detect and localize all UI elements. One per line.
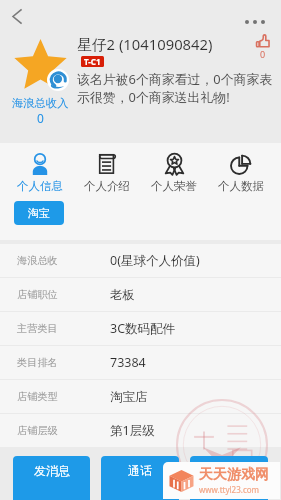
staticText: 关注 bbox=[217, 463, 241, 478]
staticText: 店铺职位 bbox=[17, 288, 110, 301]
staticText: 0 bbox=[37, 110, 44, 126]
button[interactable]: 关注 bbox=[190, 456, 268, 500]
staticText: 海浪总收 bbox=[17, 254, 110, 267]
staticText: 第1层级 bbox=[110, 422, 155, 439]
staticText: 通话 bbox=[128, 463, 152, 478]
staticText: 主营类目 bbox=[17, 322, 110, 335]
staticText: 发消息 bbox=[34, 463, 70, 478]
staticText: 星仔2 (1041090842) bbox=[77, 34, 213, 54]
button[interactable]: 淘宝 bbox=[14, 201, 64, 225]
button[interactable]: 个人数据 bbox=[214, 151, 268, 193]
staticText: 个人荣誉 bbox=[151, 179, 197, 193]
staticText: 73384 bbox=[110, 354, 146, 371]
button[interactable]: 发消息 bbox=[13, 456, 90, 500]
staticText: 淘宝店 bbox=[110, 389, 148, 405]
staticText: 老板 bbox=[110, 287, 135, 303]
button[interactable]: 店铺职位 bbox=[0, 278, 281, 311]
button[interactable]: Back bbox=[5, 4, 29, 28]
button[interactable]: 主营类目 bbox=[0, 312, 281, 345]
staticText: 店铺类型 bbox=[17, 390, 110, 403]
button[interactable]: 个人荣誉 bbox=[147, 151, 201, 193]
staticText: 个人介绍 bbox=[84, 179, 130, 193]
staticText: T-C1 bbox=[84, 56, 101, 67]
staticText: 类目排名 bbox=[17, 356, 110, 369]
staticText: 个人数据 bbox=[218, 179, 264, 193]
staticText: 天天游戏网 bbox=[199, 466, 269, 484]
staticText: 该名片被6个商家看过，0个商家表示很赞，0个商家送出礼物! bbox=[77, 70, 275, 105]
button[interactable]: 通话 bbox=[101, 456, 179, 500]
staticText: 店铺层级 bbox=[17, 424, 110, 437]
staticText: 个人信息 bbox=[17, 179, 63, 193]
staticText: 0 bbox=[260, 48, 266, 60]
button[interactable]: 店铺层级 bbox=[0, 414, 281, 447]
button[interactable]: 海浪总收 bbox=[0, 244, 281, 277]
staticText: www.ttyl23.com bbox=[199, 484, 260, 495]
staticText: 淘宝 bbox=[28, 206, 50, 220]
staticText: 3C数码配件 bbox=[110, 320, 176, 337]
staticText: 0(星球个人价值) bbox=[110, 252, 200, 269]
button[interactable]: 类目排名 bbox=[0, 346, 281, 379]
staticText: 海浪总收入 bbox=[12, 96, 69, 110]
button[interactable]: 个人介绍 bbox=[80, 151, 134, 193]
button[interactable]: 个人信息 bbox=[13, 151, 67, 193]
button[interactable]: More options bbox=[245, 17, 265, 27]
button[interactable]: Like bbox=[256, 34, 270, 60]
button[interactable]: 店铺类型 bbox=[0, 380, 281, 413]
